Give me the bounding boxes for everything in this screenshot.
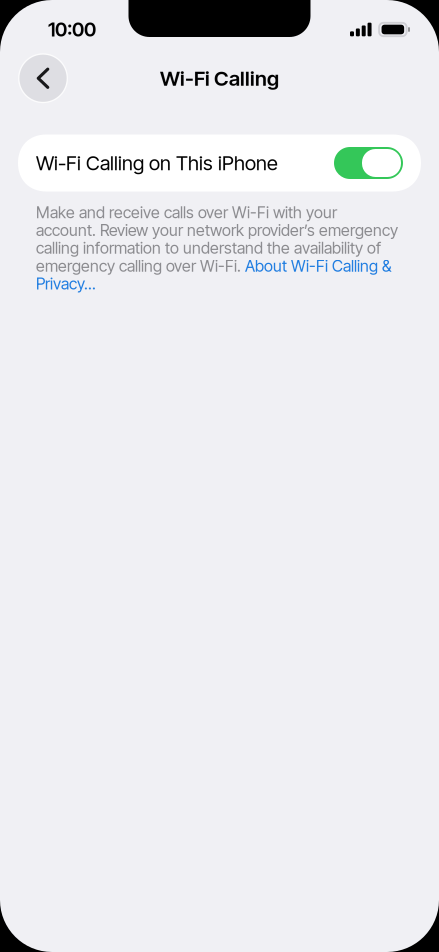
staticText: Wi-Fi Calling [160, 66, 279, 90]
button[interactable]: Wi-Fi Calling on This iPhone [18, 134, 421, 191]
button[interactable]: Back [19, 54, 67, 102]
staticText: 10:00 [48, 18, 96, 41]
staticText: Wi-Fi Calling on This iPhone [36, 151, 278, 174]
staticText: Make and receive calls over Wi-Fi with y… [36, 203, 398, 293]
